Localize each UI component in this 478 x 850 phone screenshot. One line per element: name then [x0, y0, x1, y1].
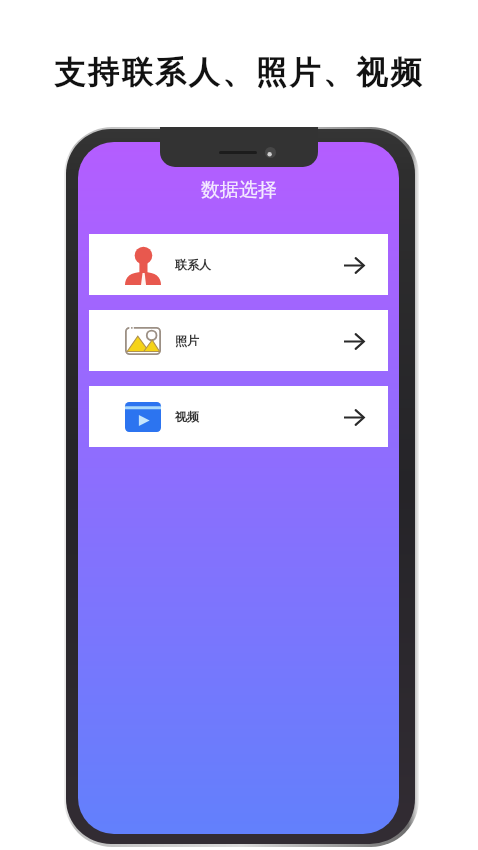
button[interactable]: 视频: [89, 386, 388, 447]
other: Open 照片: [341, 328, 367, 354]
button[interactable]: 联系人: [89, 234, 388, 295]
button[interactable]: 照片: [89, 310, 388, 371]
other: Open 视频: [341, 404, 367, 430]
staticText: 照片: [175, 333, 199, 348]
staticText: 数据选择: [201, 178, 277, 202]
staticText: 视频: [175, 409, 199, 424]
staticText: 支持联系人、照片、视频: [54, 53, 424, 92]
other: Open 联系人: [341, 252, 367, 278]
staticText: 联系人: [175, 257, 211, 272]
